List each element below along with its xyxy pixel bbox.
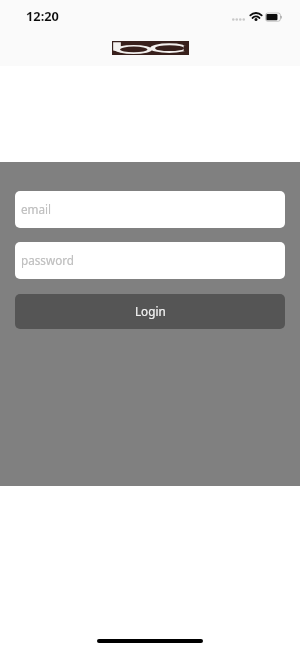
staticText: 12:20 — [26, 7, 59, 24]
button[interactable]: email — [15, 191, 285, 228]
other: Cellular signal — [232, 12, 245, 21]
staticText: email — [21, 201, 52, 217]
button[interactable]: Login — [15, 294, 285, 329]
other: Battery — [265, 13, 282, 21]
staticText: password — [21, 252, 74, 268]
button[interactable]: password — [15, 242, 285, 279]
staticText: Login — [135, 303, 166, 319]
button[interactable]: bc logo — [112, 41, 189, 55]
other: Wi-Fi — [250, 12, 262, 21]
